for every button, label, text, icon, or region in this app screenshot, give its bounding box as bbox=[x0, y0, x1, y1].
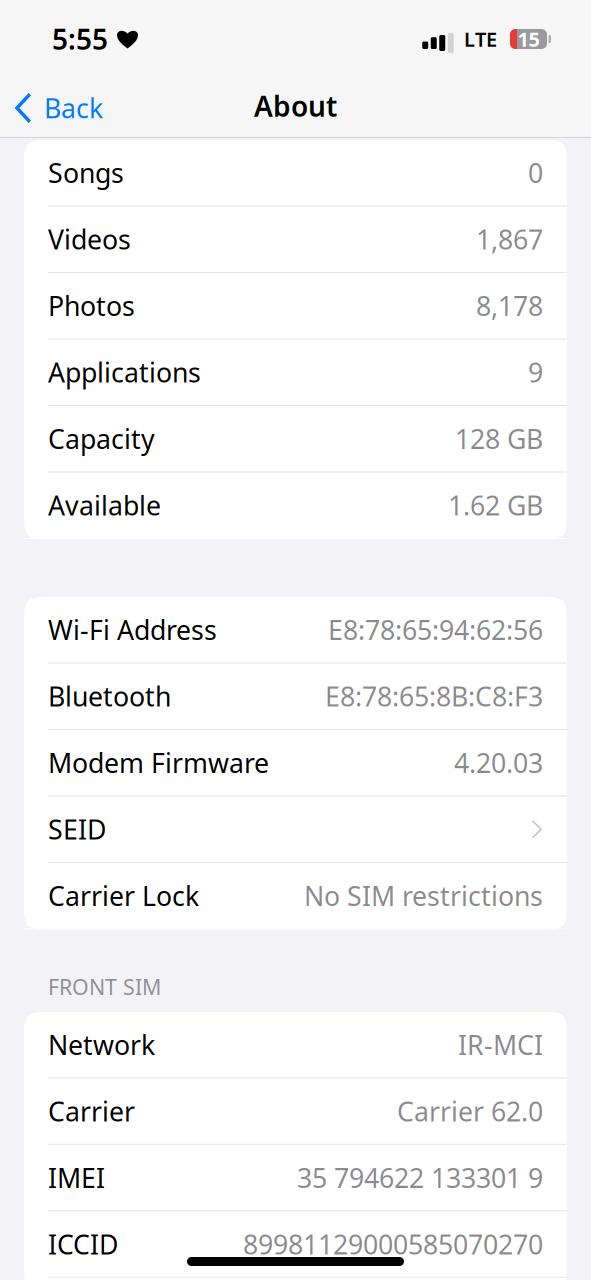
staticText: 0 bbox=[528, 155, 543, 190]
staticText: Carrier 62.0 bbox=[397, 1093, 543, 1129]
button[interactable]: ICCID bbox=[24, 1211, 567, 1278]
staticText: Photos bbox=[48, 288, 135, 323]
button[interactable]: Songs bbox=[24, 140, 567, 206]
staticText: 15 bbox=[517, 26, 539, 52]
staticText: 8,178 bbox=[476, 288, 543, 323]
staticText: E8:78:65:94:62:56 bbox=[328, 612, 543, 647]
staticText: Wi-Fi Address bbox=[48, 612, 217, 647]
staticText: 89981129000585070270 bbox=[243, 1226, 543, 1262]
button[interactable]: Videos bbox=[24, 206, 567, 273]
staticText: Network bbox=[48, 1027, 155, 1062]
button[interactable]: Wi-Fi Address bbox=[24, 597, 567, 663]
button[interactable]: Capacity bbox=[24, 406, 567, 472]
staticText: Modem Firmware bbox=[48, 745, 269, 780]
staticText: E8:78:65:8B:C8:F3 bbox=[325, 678, 543, 714]
staticText: 4.20.03 bbox=[454, 745, 543, 780]
staticText: No SIM restrictions bbox=[304, 878, 543, 913]
staticText: LTE bbox=[464, 26, 497, 52]
button[interactable]: Back bbox=[0, 82, 119, 134]
staticText: IR-MCI bbox=[458, 1027, 543, 1062]
staticText: 1,867 bbox=[476, 221, 543, 257]
button[interactable]: Available bbox=[24, 472, 567, 539]
staticText: 128 GB bbox=[455, 421, 543, 456]
staticText: 1.62 GB bbox=[448, 487, 543, 523]
staticText: ICCID bbox=[48, 1226, 118, 1262]
staticText: Songs bbox=[48, 155, 124, 190]
staticText: FRONT SIM bbox=[48, 972, 161, 1001]
staticText: SEID bbox=[48, 811, 106, 847]
staticText: 35 794622 133301 9 bbox=[297, 1160, 543, 1195]
button[interactable]: SEID bbox=[24, 796, 567, 863]
staticText: Videos bbox=[48, 221, 131, 257]
staticText: Available bbox=[48, 487, 161, 523]
button[interactable]: Network bbox=[24, 1012, 567, 1078]
button[interactable]: Carrier Lock bbox=[24, 863, 567, 929]
staticText: Bluetooth bbox=[48, 678, 171, 714]
staticText: About bbox=[254, 87, 337, 125]
staticText: Carrier Lock bbox=[48, 878, 199, 913]
staticText: Back bbox=[44, 90, 103, 126]
button[interactable]: Carrier bbox=[24, 1078, 567, 1145]
staticText: 5:55 bbox=[52, 20, 108, 58]
button[interactable]: Photos bbox=[24, 273, 567, 339]
staticText: Applications bbox=[48, 354, 201, 390]
button[interactable]: Applications bbox=[24, 339, 567, 406]
button[interactable]: Bluetooth bbox=[24, 663, 567, 730]
staticText: 9 bbox=[528, 354, 543, 390]
staticText: Capacity bbox=[48, 421, 155, 456]
staticText: Carrier bbox=[48, 1093, 135, 1129]
button[interactable]: IMEI bbox=[24, 1145, 567, 1211]
staticText: IMEI bbox=[48, 1160, 105, 1195]
button[interactable]: Modem Firmware bbox=[24, 730, 567, 796]
